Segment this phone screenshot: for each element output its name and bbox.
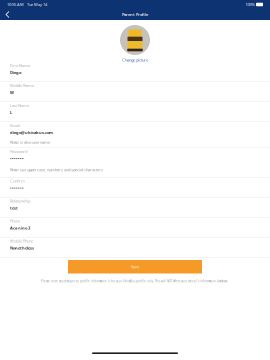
staticText: 10:55 AM Tue May 14 (7, 2, 47, 7)
button[interactable]: Back (3, 10, 17, 19)
staticText: ••••••• (10, 185, 24, 191)
staticText: Note: is also username (10, 139, 50, 145)
staticText: Parent Profile (122, 12, 148, 17)
staticText: Password (10, 149, 27, 154)
staticText: Last Name (10, 103, 29, 108)
staticText: test (10, 205, 18, 211)
staticText: 100% (245, 2, 254, 7)
staticText: Mobile Phone (10, 238, 33, 244)
button[interactable]: Profile picture (120, 25, 150, 55)
staticText: M (10, 90, 14, 95)
staticText: Middle Name (10, 83, 34, 88)
staticText: Confirm (10, 178, 25, 184)
button[interactable]: Change picture (122, 55, 148, 65)
staticText: Aca nino 3 (10, 225, 30, 231)
staticText: Nonetheless (10, 245, 34, 251)
staticText: Phone (10, 218, 20, 224)
staticText: Diego (10, 70, 21, 75)
button[interactable]: Save (68, 260, 202, 273)
staticText: Save (131, 264, 139, 269)
staticText: L (10, 110, 12, 115)
staticText: First Name (10, 63, 30, 68)
staticText: Please note any changes to profile infor… (41, 279, 229, 283)
staticText: diego@ubicabus.com (10, 130, 53, 135)
staticText: Change picture (122, 57, 148, 63)
staticText: Note: use uppercase, numbers and special… (10, 167, 103, 172)
staticText: ••••••• (10, 156, 24, 161)
staticText: Email (10, 123, 20, 128)
staticText: Relationship (10, 198, 30, 204)
